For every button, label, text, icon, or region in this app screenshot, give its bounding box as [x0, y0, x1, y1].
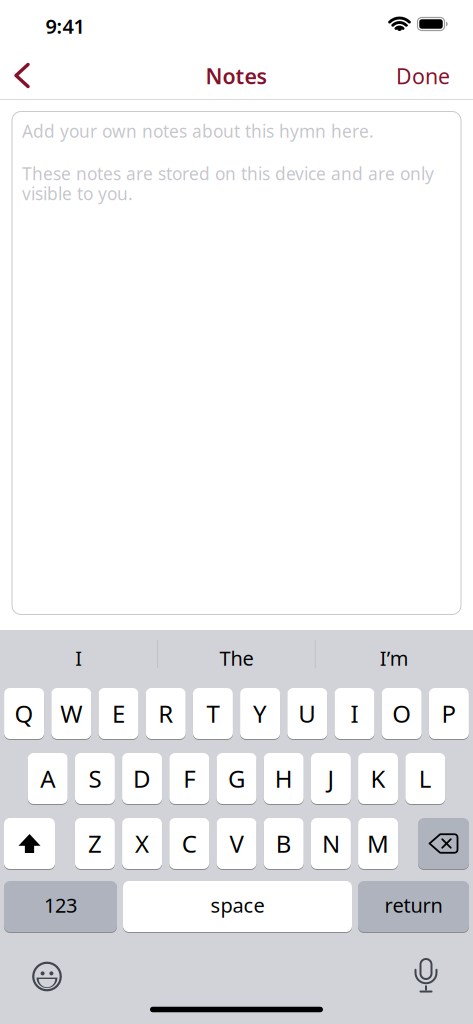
button[interactable]: Shift	[4, 817, 55, 869]
staticText: 123	[44, 892, 77, 918]
staticText: O	[392, 698, 411, 729]
staticText: The	[219, 645, 253, 671]
staticText: M	[367, 828, 389, 859]
button[interactable]: X	[122, 817, 162, 869]
staticText: Notes	[205, 62, 267, 90]
button[interactable]: Dictate	[408, 955, 444, 995]
button[interactable]: H	[264, 752, 304, 804]
button[interactable]: B	[264, 817, 304, 869]
staticText: I	[350, 698, 358, 729]
staticText: J	[327, 763, 334, 794]
button[interactable]: A	[28, 752, 68, 804]
button[interactable]: T	[193, 687, 233, 739]
button[interactable]: L	[405, 752, 445, 804]
button[interactable]: K	[358, 752, 398, 804]
button[interactable]: The	[166, 640, 306, 676]
staticText: D	[133, 763, 151, 794]
staticText: H	[275, 763, 293, 794]
button[interactable]: M	[358, 817, 398, 869]
staticText: I’m	[380, 645, 409, 671]
button[interactable]: Z	[75, 817, 115, 869]
button[interactable]: Emoji	[29, 958, 65, 994]
button[interactable]: 123	[4, 880, 117, 932]
button[interactable]: Back	[8, 60, 36, 90]
staticText: L	[419, 763, 432, 794]
button[interactable]: U	[287, 687, 327, 739]
staticText: Z	[88, 828, 102, 859]
staticText: U	[298, 698, 316, 729]
button[interactable]: Y	[240, 687, 280, 739]
button[interactable]: G	[216, 752, 256, 804]
staticText: Q	[15, 698, 34, 729]
staticText: A	[40, 763, 55, 794]
staticText: E	[112, 698, 125, 729]
button[interactable]: E	[98, 687, 138, 739]
staticText: R	[158, 698, 173, 729]
staticText: N	[322, 828, 340, 859]
staticText: P	[441, 698, 456, 729]
button[interactable]: W	[51, 687, 91, 739]
button[interactable]: D	[122, 752, 162, 804]
staticText: space	[210, 892, 264, 918]
button[interactable]: J	[311, 752, 351, 804]
staticText: V	[229, 828, 243, 859]
staticText: G	[228, 763, 245, 794]
staticText: 9:41	[45, 13, 84, 39]
button[interactable]: S	[75, 752, 115, 804]
button[interactable]: N	[311, 817, 351, 869]
staticText: Y	[253, 698, 267, 729]
button[interactable]: Done	[370, 62, 450, 90]
button[interactable]: C	[169, 817, 209, 869]
staticText: Done	[396, 62, 450, 90]
button[interactable]: O	[382, 687, 422, 739]
staticText: visible to you.	[22, 182, 133, 205]
button[interactable]: R	[146, 687, 186, 739]
staticText: I	[75, 645, 82, 671]
staticText: T	[206, 698, 219, 729]
staticText: K	[371, 763, 386, 794]
button[interactable]: P	[429, 687, 469, 739]
button[interactable]: I	[334, 687, 374, 739]
button[interactable]: Delete	[418, 817, 469, 869]
staticText: Add your own notes about this hymn here.	[22, 119, 374, 142]
staticText: W	[60, 698, 82, 729]
staticText: return	[384, 892, 442, 918]
staticText: B	[276, 828, 292, 859]
button[interactable]: return	[358, 880, 469, 932]
staticText: C	[182, 828, 197, 859]
button[interactable]: F	[169, 752, 209, 804]
staticText: F	[183, 763, 195, 794]
button[interactable]: V	[216, 817, 256, 869]
button[interactable]: I’m	[324, 640, 464, 676]
button[interactable]: I	[9, 640, 149, 676]
button[interactable]: space	[123, 880, 352, 932]
staticText: These notes are stored on this device an…	[22, 162, 434, 185]
staticText: X	[135, 828, 149, 859]
staticText: S	[88, 763, 101, 794]
button[interactable]: Q	[4, 687, 44, 739]
